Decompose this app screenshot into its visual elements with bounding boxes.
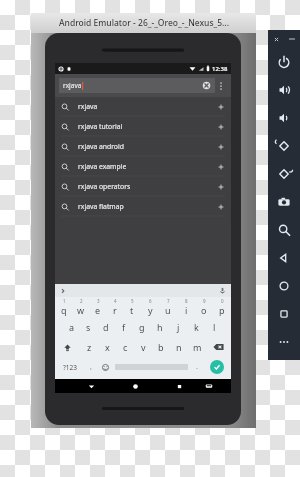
button[interactable]: Clear search	[202, 81, 211, 90]
staticText: v	[141, 341, 146, 353]
button[interactable]: a	[63, 317, 80, 337]
staticText: d	[103, 321, 109, 333]
button[interactable]: Space	[113, 357, 189, 377]
button[interactable]: Backspace	[206, 337, 231, 357]
button[interactable]: ,	[83, 357, 98, 377]
button[interactable]: 3	[89, 297, 106, 317]
staticText: rxjava operators	[78, 182, 131, 191]
button[interactable]: Voice input	[218, 286, 227, 295]
staticText: ?123	[63, 363, 77, 372]
button[interactable]: rxjava	[55, 97, 231, 116]
button[interactable]: More options	[215, 74, 227, 97]
button[interactable]: 2	[72, 297, 89, 317]
button[interactable]: rxjava	[59, 78, 215, 93]
button[interactable]: 1	[55, 297, 72, 317]
button[interactable]: s	[80, 317, 97, 337]
button[interactable]: m	[188, 337, 206, 357]
button[interactable]: g	[133, 317, 151, 337]
staticText: rxjava example	[78, 162, 127, 171]
staticText: rxjava	[63, 81, 82, 90]
staticText: a	[69, 321, 75, 333]
button[interactable]: Back	[268, 244, 300, 272]
staticText: z	[87, 341, 92, 353]
button[interactable]: 0	[213, 297, 231, 317]
button[interactable]: rxjava example	[55, 157, 231, 176]
button[interactable]: Overview	[268, 300, 300, 328]
button[interactable]: 9	[195, 297, 213, 317]
staticText: u	[165, 304, 171, 316]
button[interactable]: Close	[268, 30, 284, 48]
staticText: 9	[203, 298, 206, 304]
staticText: ,	[90, 362, 92, 372]
button[interactable]: h	[151, 317, 169, 337]
button[interactable]: rxjava tutorial	[55, 117, 231, 136]
staticText: w	[77, 304, 85, 316]
button[interactable]: Rotate right	[268, 160, 300, 188]
button[interactable]: 7	[159, 297, 177, 317]
staticText: rxjava flatmap	[78, 202, 124, 211]
button[interactable]: Rotate left	[268, 132, 300, 160]
staticText: n	[176, 341, 182, 353]
button[interactable]: rxjava android	[55, 137, 231, 156]
button[interactable]: Screenshot	[268, 188, 300, 216]
button[interactable]: Power	[268, 48, 300, 76]
staticText: 8	[185, 298, 188, 304]
staticText: o	[201, 304, 207, 316]
button[interactable]: z	[80, 337, 98, 357]
staticText: b	[158, 341, 164, 353]
button[interactable]: c	[116, 337, 134, 357]
staticText: x	[105, 341, 110, 353]
button[interactable]: l	[205, 317, 223, 337]
button[interactable]: Volume up	[268, 76, 300, 104]
button[interactable]: b	[152, 337, 170, 357]
staticText: i	[185, 304, 188, 316]
button[interactable]: k	[187, 317, 205, 337]
button[interactable]: Keyboard	[198, 379, 220, 393]
button[interactable]: Shift	[55, 337, 80, 357]
staticText: 4	[114, 298, 117, 304]
button[interactable]: Zoom	[268, 216, 300, 244]
staticText: 5	[131, 298, 134, 304]
button[interactable]: 8	[177, 297, 195, 317]
button[interactable]: x	[98, 337, 116, 357]
button[interactable]: 5	[123, 297, 141, 317]
staticText: rxjava android	[78, 142, 124, 151]
staticText: p	[219, 304, 225, 316]
button[interactable]: Home	[124, 379, 146, 393]
button[interactable]: j	[169, 317, 187, 337]
button[interactable]: Home	[268, 272, 300, 300]
button[interactable]: v	[134, 337, 152, 357]
staticText: c	[123, 341, 128, 353]
button[interactable]: Overview	[168, 379, 190, 393]
staticText: r	[113, 304, 117, 316]
staticText: 3	[97, 298, 100, 304]
button[interactable]: 4	[106, 297, 123, 317]
staticText: 6	[149, 298, 152, 304]
staticText: 7	[167, 298, 170, 304]
button[interactable]: .	[189, 357, 204, 377]
staticText: m	[193, 341, 202, 353]
staticText: .	[196, 362, 198, 372]
button[interactable]: rxjava operators	[55, 177, 231, 196]
button[interactable]: Volume down	[268, 104, 300, 132]
button[interactable]: rxjava flatmap	[55, 197, 231, 216]
staticText: k	[194, 321, 199, 333]
staticText: rxjava tutorial	[78, 122, 123, 131]
button[interactable]: ?123	[57, 357, 83, 377]
button[interactable]: Minimize	[284, 30, 300, 48]
button[interactable]: d	[97, 317, 115, 337]
button[interactable]: Expand toolbar	[59, 287, 67, 295]
staticText: rxjava	[78, 102, 98, 111]
button[interactable]: Emoji	[98, 357, 113, 377]
button[interactable]: n	[170, 337, 188, 357]
button[interactable]: 6	[141, 297, 159, 317]
staticText: 2	[80, 298, 83, 304]
staticText: g	[139, 321, 145, 333]
button[interactable]: f	[115, 317, 133, 337]
button[interactable]: Back	[80, 379, 102, 393]
staticText: f	[122, 321, 126, 333]
staticText: e	[95, 304, 101, 316]
button[interactable]: Enter	[204, 357, 229, 377]
staticText: h	[157, 321, 163, 333]
button[interactable]: More	[268, 328, 300, 356]
